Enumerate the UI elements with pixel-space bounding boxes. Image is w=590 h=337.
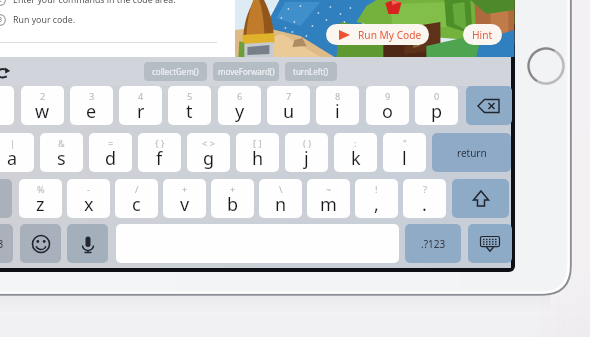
staticText: 8	[335, 90, 341, 103]
staticText: ?	[423, 183, 427, 196]
staticText: !	[375, 183, 378, 196]
staticText: w	[35, 99, 50, 124]
staticText: 5	[187, 90, 193, 103]
staticText: .?123	[0, 237, 4, 251]
staticText: \	[279, 183, 283, 196]
button[interactable]: Hide keyboard	[468, 224, 512, 263]
staticText: 9	[385, 90, 391, 103]
button[interactable]: -	[67, 179, 110, 218]
staticText: b	[227, 192, 239, 217]
staticText: c	[132, 192, 141, 217]
staticText: < >	[202, 137, 215, 150]
staticText: z	[36, 192, 45, 217]
staticText: 3	[89, 90, 95, 103]
button[interactable]: .?123	[0, 224, 13, 263]
staticText: return	[457, 146, 487, 160]
button[interactable]: 4	[119, 86, 162, 125]
staticText: s	[57, 146, 66, 171]
button[interactable]: { }	[138, 133, 181, 172]
button[interactable]: turnLeft()	[285, 62, 337, 81]
staticText: r	[137, 99, 145, 124]
button[interactable]: "	[383, 133, 426, 172]
staticText: moveForward()	[218, 66, 275, 77]
button[interactable]: 0	[415, 86, 458, 125]
staticText: .	[422, 192, 427, 217]
staticText: 4	[138, 90, 144, 103]
button[interactable]: Delete	[466, 86, 512, 125]
staticText: 0	[434, 90, 440, 103]
button[interactable]: Run My Code	[326, 24, 429, 45]
button[interactable]: Shift	[452, 179, 509, 218]
button[interactable]: 3	[70, 86, 113, 125]
button[interactable]: ( )	[285, 133, 328, 172]
button[interactable]: return	[432, 133, 511, 172]
staticText: Run your code.	[13, 14, 76, 26]
button[interactable]: [ ]	[236, 133, 279, 172]
staticText: e	[86, 99, 97, 124]
staticText: Enter your commands in the code area.	[13, 0, 176, 6]
staticText: { }	[155, 137, 165, 150]
button[interactable]: &	[40, 133, 83, 172]
staticText: g	[203, 146, 215, 171]
staticText: +	[182, 183, 188, 196]
staticText: turnLeft()	[293, 66, 329, 77]
button[interactable]: moveForward()	[213, 62, 279, 81]
staticText: t	[186, 99, 193, 124]
button[interactable]: < >	[187, 133, 230, 172]
button[interactable]: \	[259, 179, 302, 218]
button[interactable]: ~	[307, 179, 350, 218]
staticText: h	[252, 146, 264, 171]
button[interactable]: 8	[316, 86, 359, 125]
button[interactable]: collectGem()	[144, 62, 207, 81]
button[interactable]: %	[19, 179, 62, 218]
button[interactable]: |	[0, 133, 34, 172]
button[interactable]: 6	[218, 86, 261, 125]
button[interactable]: Dictate	[67, 224, 108, 263]
staticText: 6	[237, 90, 243, 103]
button[interactable]: :	[334, 133, 377, 172]
staticText: x	[84, 192, 94, 217]
button[interactable]: =	[89, 133, 132, 172]
staticText: n	[275, 192, 287, 217]
staticText: :	[354, 137, 357, 150]
button[interactable]: /	[115, 179, 158, 218]
button[interactable]: 9	[366, 86, 409, 125]
button[interactable]: Hint	[463, 24, 502, 45]
staticText: ( )	[303, 137, 311, 150]
button[interactable]: 5	[168, 86, 211, 125]
staticText: ~	[326, 183, 332, 196]
button[interactable]: !	[355, 179, 398, 218]
staticText: 3	[0, 15, 3, 25]
staticText: d	[105, 146, 117, 171]
staticText: m	[320, 192, 337, 217]
button[interactable]: .?123	[405, 224, 461, 263]
staticText: +	[230, 183, 236, 196]
button[interactable]: 7	[267, 86, 310, 125]
staticText: =	[108, 137, 114, 150]
button[interactable]: 2	[21, 86, 64, 125]
staticText: collectGem()	[152, 66, 199, 77]
staticText: 7	[286, 90, 292, 103]
staticText: /	[135, 183, 139, 196]
staticText: [ ]	[253, 137, 262, 150]
button[interactable]	[0, 179, 12, 218]
staticText: i	[335, 99, 340, 124]
staticText: y	[235, 99, 245, 124]
staticText: p	[431, 99, 443, 124]
button[interactable]: +	[211, 179, 254, 218]
staticText: u	[283, 99, 295, 124]
staticText: 2	[0, 0, 3, 5]
staticText: %	[37, 183, 45, 196]
button[interactable]: Emoji	[20, 224, 61, 263]
staticText: a	[7, 146, 18, 171]
button[interactable]: 1	[0, 86, 14, 125]
button[interactable]: +	[163, 179, 206, 218]
staticText: 2	[40, 90, 46, 103]
staticText: Run My Code	[358, 28, 422, 42]
staticText: o	[382, 99, 393, 124]
staticText: -	[87, 183, 90, 196]
button[interactable]: Redo	[0, 66, 12, 80]
button[interactable]: ?	[403, 179, 446, 218]
staticText: j	[304, 146, 309, 171]
